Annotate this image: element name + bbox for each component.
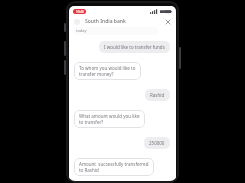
staticText: today — [76, 28, 87, 33]
button[interactable]: What amount would you like to transfer? — [74, 110, 145, 128]
staticText: Rashid — [150, 92, 165, 98]
staticText: I would like to transfer funds — [104, 44, 165, 50]
button[interactable]: Rashid — [145, 89, 170, 101]
button[interactable]: Close — [164, 18, 171, 25]
staticText: Amount successfully transferred to Rashi… — [79, 161, 149, 173]
button[interactable]: Voice input — [69, 176, 176, 181]
button[interactable]: To whom you would like to transfer money… — [74, 62, 141, 80]
staticText: To whom you would like to transfer money… — [79, 65, 136, 77]
staticText: 250000 — [149, 140, 165, 146]
staticText: 10:48 — [76, 10, 84, 14]
button[interactable]: Amount successfully transferred to Rashi… — [74, 158, 154, 176]
staticText: South India bank — [85, 18, 126, 25]
button[interactable]: I would like to transfer funds — [99, 41, 170, 53]
button[interactable]: 250000 — [144, 137, 170, 149]
staticText: What amount would you like to transfer? — [79, 113, 140, 125]
